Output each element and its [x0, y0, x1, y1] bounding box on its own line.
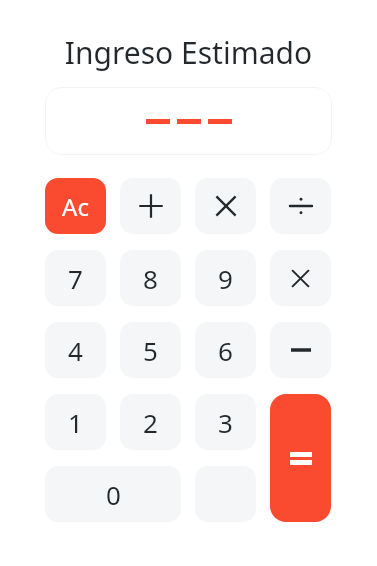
button[interactable]: Equals: [270, 394, 331, 522]
button[interactable]: Divide: [270, 178, 331, 234]
button[interactable]: 1: [45, 394, 106, 450]
button[interactable]: Multiply: [270, 250, 331, 306]
staticText: 1: [68, 405, 83, 440]
staticText: 9: [218, 261, 233, 296]
button[interactable]: 7: [45, 250, 106, 306]
button[interactable]: [45, 87, 332, 155]
button[interactable]: 5: [120, 322, 181, 378]
staticText: 0: [106, 477, 121, 512]
staticText: 4: [68, 333, 83, 368]
button[interactable]: 9: [195, 250, 256, 306]
button[interactable]: 4: [45, 322, 106, 378]
button[interactable]: 0: [45, 466, 181, 522]
staticText: Ingreso Estimado: [14, 32, 363, 73]
staticText: 2: [143, 405, 158, 440]
button[interactable]: 2: [120, 394, 181, 450]
button[interactable]: 3: [195, 394, 256, 450]
staticText: 6: [218, 333, 233, 368]
button[interactable]: Minus: [270, 322, 331, 378]
button[interactable]: Ac: [45, 178, 106, 234]
button[interactable]: 8: [120, 250, 181, 306]
button[interactable]: Plus: [120, 178, 181, 234]
button[interactable]: Multiply: [195, 178, 256, 234]
staticText: 7: [68, 261, 83, 296]
staticText: Ac: [62, 190, 89, 223]
staticText: 8: [143, 261, 158, 296]
button[interactable]: 6: [195, 322, 256, 378]
staticText: 3: [218, 405, 233, 440]
staticText: 5: [143, 333, 158, 368]
